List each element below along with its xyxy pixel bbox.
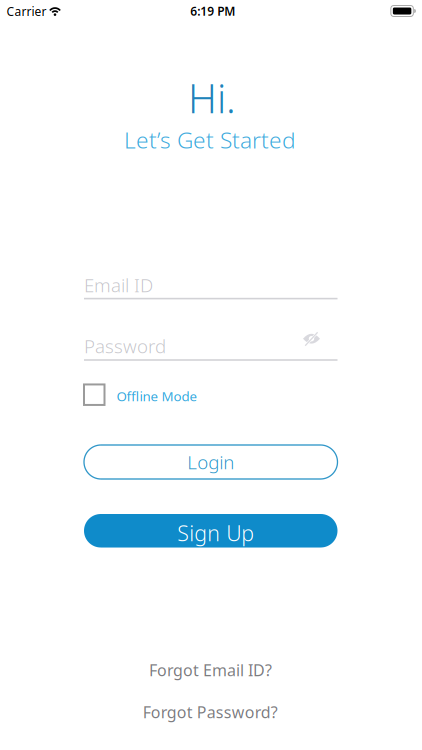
staticText: Hi.: [188, 71, 236, 124]
staticText: Email ID: [84, 273, 153, 297]
staticText: Carrier: [6, 3, 46, 19]
button[interactable]: Sign Up: [84, 514, 337, 547]
button[interactable]: Show password: [303, 333, 320, 344]
staticText: Login: [187, 450, 234, 474]
button[interactable]: Offline Mode: [84, 384, 337, 405]
staticText: Sign Up: [177, 519, 254, 547]
staticText: Forgot Email ID?: [149, 659, 272, 681]
button[interactable]: Login: [84, 445, 337, 479]
staticText: Let’s Get Started: [124, 125, 296, 155]
staticText: 6:19 PM: [190, 3, 235, 19]
staticText: Password: [84, 334, 166, 358]
button[interactable]: Forgot Password?: [143, 701, 278, 723]
staticText: Offline Mode: [116, 387, 197, 405]
button[interactable]: Forgot Email ID?: [149, 659, 272, 681]
staticText: Forgot Password?: [143, 701, 278, 723]
